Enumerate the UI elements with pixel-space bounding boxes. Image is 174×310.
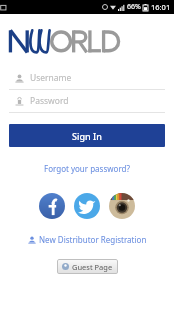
staticText: Guest Page — [72, 262, 113, 272]
button[interactable]: Guest Page — [57, 259, 118, 274]
staticText: Password — [30, 95, 69, 107]
staticText: 16:01 — [151, 2, 171, 12]
button[interactable]: Sign In — [9, 124, 165, 147]
staticText: 66% — [127, 2, 141, 12]
button[interactable]: New Distributor Registration — [22, 232, 153, 247]
staticText: Sign In — [72, 130, 102, 142]
staticText: Username — [30, 72, 72, 84]
button[interactable]: Sign in with Facebook — [39, 193, 65, 219]
staticText: Forgot your password? — [44, 163, 130, 174]
button[interactable]: Forgot your password? — [38, 161, 136, 176]
button[interactable]: Username — [9, 67, 165, 89]
staticText: New Distributor Registration — [39, 234, 147, 245]
button[interactable]: Sign in with Instagram — [109, 193, 135, 219]
button[interactable]: Sign in with Twitter — [74, 193, 100, 219]
button[interactable]: Password — [9, 90, 165, 112]
